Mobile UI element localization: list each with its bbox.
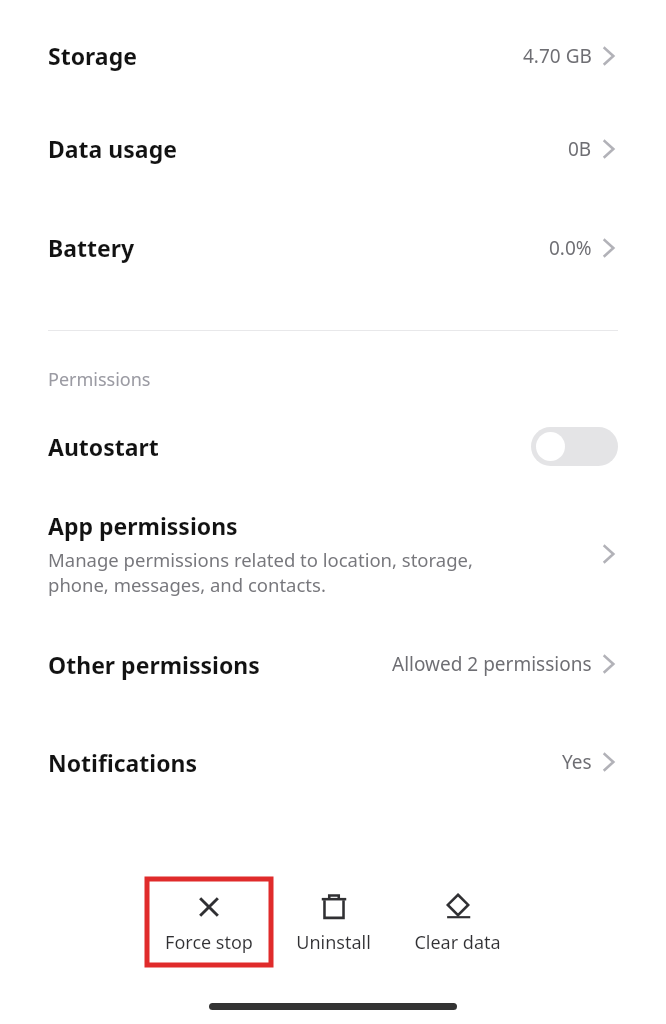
- staticText: Autostart: [48, 431, 159, 462]
- button[interactable]: Force stop: [147, 879, 271, 965]
- button[interactable]: Clear data: [395, 879, 519, 965]
- staticText: Permissions: [48, 367, 151, 392]
- button[interactable]: Battery: [0, 198, 666, 297]
- staticText: Data usage: [48, 133, 177, 164]
- button[interactable]: Autostart: [0, 414, 666, 478]
- staticText: Force stop: [165, 930, 253, 955]
- staticText: 0B: [568, 136, 592, 162]
- button[interactable]: App permissions: [0, 510, 666, 597]
- button[interactable]: Uninstall: [271, 879, 395, 965]
- staticText: Yes: [562, 749, 592, 775]
- staticText: Allowed 2 permissions: [392, 651, 592, 677]
- staticText: Battery: [48, 232, 135, 263]
- staticText: 4.70 GB: [523, 43, 592, 69]
- staticText: Other permissions: [48, 649, 260, 680]
- button[interactable]: Storage: [0, 12, 666, 99]
- button[interactable]: Data usage: [0, 99, 666, 198]
- staticText: Notifications: [48, 747, 198, 778]
- staticText: Manage permissions related to location, …: [48, 547, 473, 597]
- staticText: Storage: [48, 40, 137, 71]
- staticText: 0.0%: [549, 235, 592, 261]
- staticText: App permissions: [48, 510, 238, 541]
- button[interactable]: Other permissions: [0, 635, 666, 693]
- staticText: Clear data: [414, 930, 501, 955]
- button[interactable]: Notifications: [0, 733, 666, 791]
- staticText: Uninstall: [296, 930, 371, 955]
- button[interactable]: Autostart toggle: [531, 427, 618, 466]
